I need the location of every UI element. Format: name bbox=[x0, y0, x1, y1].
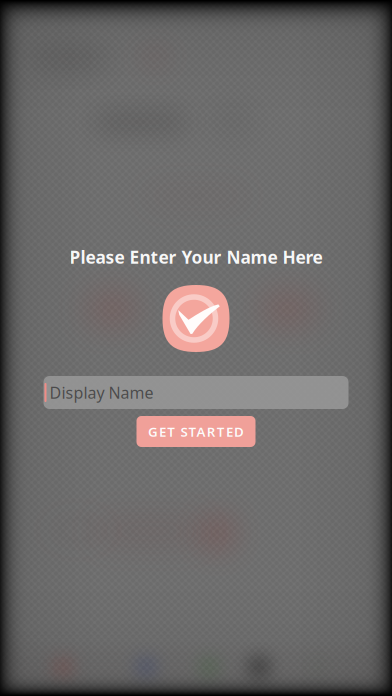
button[interactable]: GET STARTED bbox=[136, 416, 255, 447]
staticText: GET STARTED bbox=[148, 423, 244, 440]
staticText: Please Enter Your Name Here bbox=[69, 245, 322, 268]
staticText: Display Name bbox=[49, 382, 153, 403]
